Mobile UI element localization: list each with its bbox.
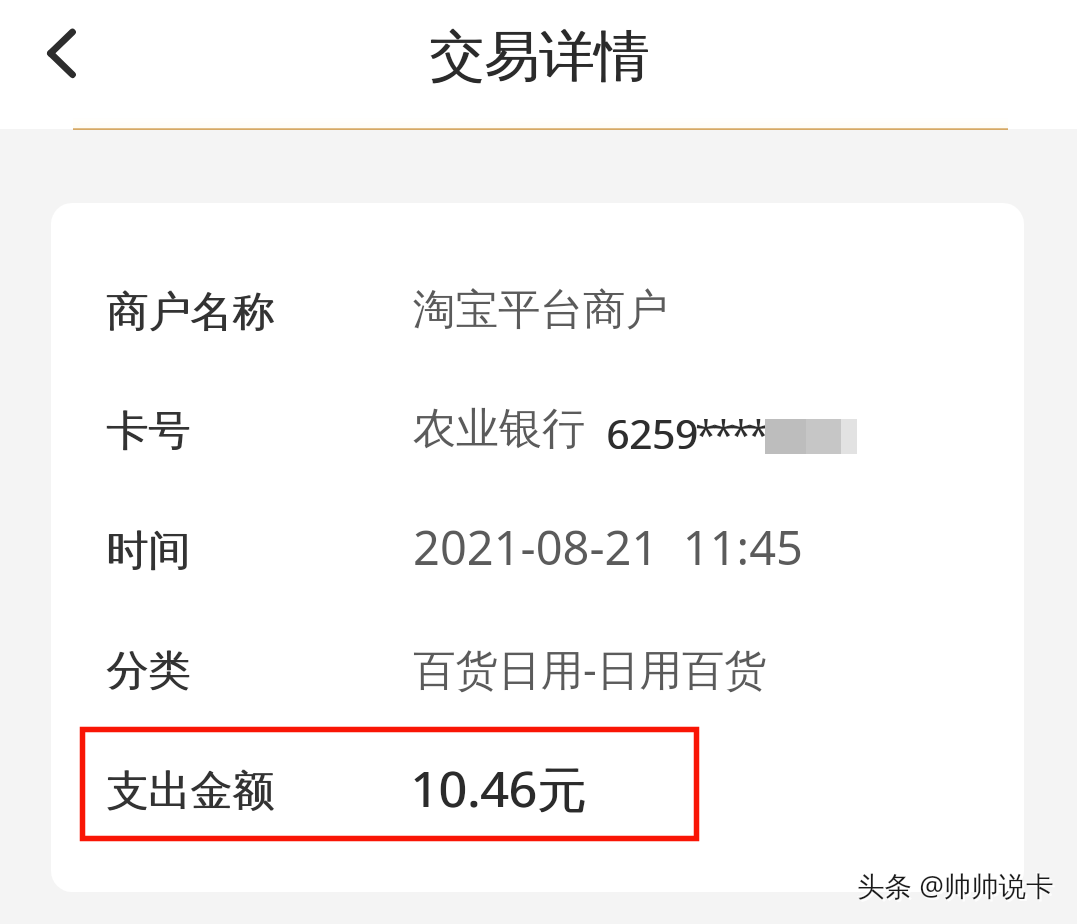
staticText: 卡号 [107,405,191,458]
staticText: 农业银行 [413,402,585,456]
staticText: 头条 @帅帅说卡 [859,869,1056,907]
button[interactable]: 卡号 [51,370,1024,490]
staticText: 分类 [107,645,191,698]
staticText: 商户名称 [106,286,274,339]
staticText: 时间 [107,525,191,578]
staticText: 交易详情 [430,22,650,91]
staticText: 6259 [607,406,699,460]
button[interactable]: 支出金额 [51,730,1024,850]
staticText: 支出金额 [107,765,275,818]
staticText: 商户名称 [107,286,275,339]
staticText: 百货日用-日用百货 [413,640,767,698]
staticText: 头条 @帅帅说卡 [857,867,1054,905]
button[interactable]: Back [18,12,102,94]
staticText: **** [695,406,766,460]
staticText: 6259 [606,406,698,460]
button[interactable]: 商户名称 [51,251,1024,371]
staticText: 10.46元 [411,754,588,822]
staticText: 时间 [106,525,190,578]
staticText: 头条 @帅帅说卡 [856,866,1053,904]
button[interactable]: 分类 [51,610,1024,730]
staticText: 2021-08-21 11:45 [413,515,803,579]
button[interactable]: 时间 [51,490,1024,610]
staticText: 分类 [106,645,190,698]
staticText: 淘宝平台商户 [413,283,668,337]
staticText: 支出金额 [106,765,274,818]
staticText: 卡号 [106,405,190,458]
staticText: 10.46元 [410,754,587,822]
staticText: 交易详情 [429,22,649,91]
